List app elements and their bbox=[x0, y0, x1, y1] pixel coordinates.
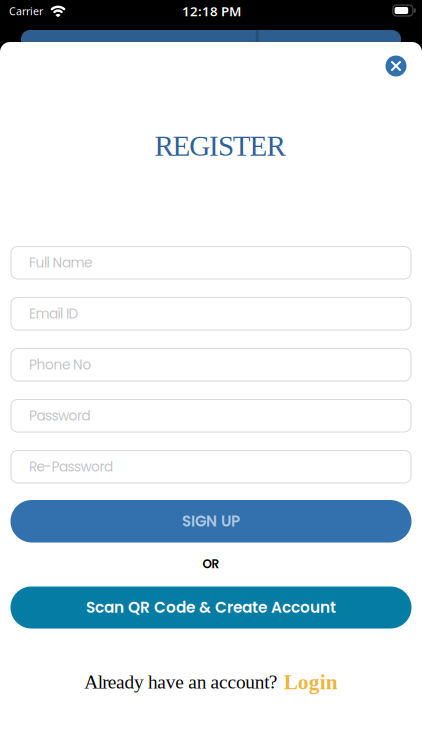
button[interactable]: Close bbox=[381, 51, 411, 81]
button[interactable]: Login bbox=[284, 670, 338, 694]
staticText: Email ID bbox=[29, 304, 78, 323]
button[interactable]: Scan QR Code & Create Account bbox=[10, 586, 411, 628]
staticText: Carrier bbox=[9, 4, 43, 18]
textField[interactable]: Email ID bbox=[11, 297, 411, 330]
textField[interactable]: Full Name bbox=[11, 246, 411, 279]
textField[interactable]: Phone No bbox=[11, 348, 411, 381]
button[interactable]: SIGN UP bbox=[10, 500, 411, 542]
staticText: Full Name bbox=[29, 253, 92, 272]
staticText: REGISTER bbox=[154, 130, 285, 162]
staticText: SIGN UP bbox=[182, 511, 240, 532]
staticText: Phone No bbox=[29, 355, 91, 374]
textField[interactable]: Re-Password bbox=[11, 450, 411, 483]
staticText: Re-Password bbox=[29, 457, 113, 476]
textField[interactable]: Password bbox=[11, 399, 411, 432]
staticText: OR bbox=[202, 556, 219, 572]
staticText: Password bbox=[29, 406, 90, 425]
staticText: Already have an account? bbox=[84, 671, 278, 693]
staticText: Scan QR Code & Create Account bbox=[86, 597, 336, 618]
staticText: 12:18 PM bbox=[182, 2, 241, 20]
staticText: Login bbox=[284, 670, 338, 694]
